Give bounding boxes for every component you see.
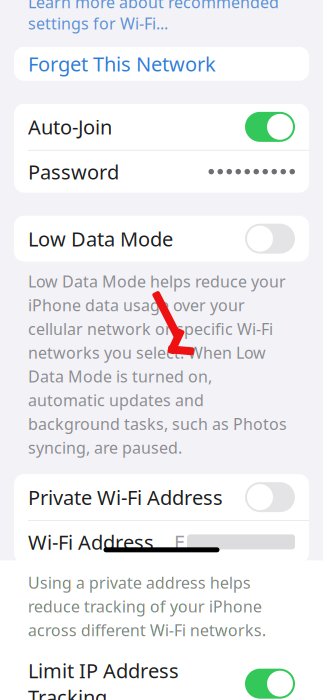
button[interactable]: Auto-Join [14,104,309,150]
staticText: Forget This Network [28,51,216,77]
staticText: Learn more about recommended settings fo… [28,0,279,34]
button[interactable]: Private Wi-Fi Address [14,474,309,520]
staticText: Wi-Fi Address [28,529,154,555]
button[interactable]: On [245,112,295,142]
staticText: Low Data Mode helps reduce your iPhone d… [28,271,287,458]
button[interactable]: Low Data Mode [14,216,309,262]
button[interactable]: Off [245,482,295,512]
staticText: Private Wi-Fi Address [28,484,223,510]
button[interactable]: Wi-Fi Address [14,521,309,563]
button[interactable]: Limit IP Address Tracking [14,661,309,700]
button[interactable]: Learn more about recommended settings fo… [0,0,323,47]
button[interactable]: On [245,669,295,699]
button[interactable]: Password [14,151,309,193]
staticText: Using a private address helps reduce tra… [28,572,266,641]
staticText: Limit IP Address Tracking [28,657,179,700]
button[interactable]: Off [245,224,295,254]
staticText: Low Data Mode [28,225,173,252]
staticText: Password [28,158,119,185]
staticText: Auto-Join [28,114,112,140]
button[interactable]: Forget This Network [14,47,309,81]
staticText: E [174,529,185,555]
